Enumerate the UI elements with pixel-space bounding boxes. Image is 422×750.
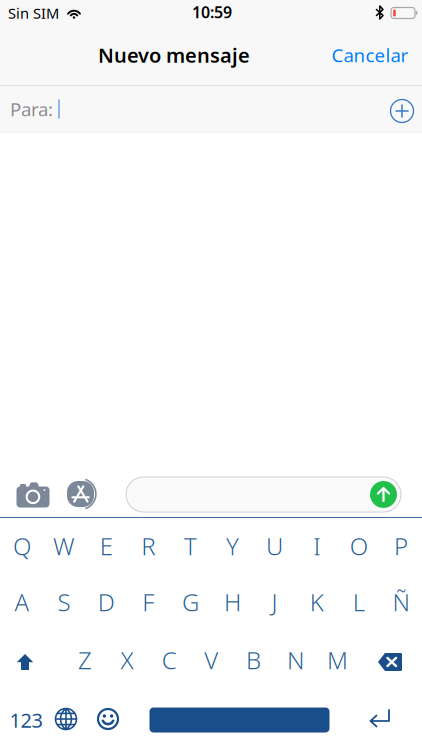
- button[interactable]: Space: [139, 698, 339, 742]
- staticText: O: [350, 530, 368, 562]
- staticText: Z: [78, 644, 92, 676]
- button[interactable]: S: [43, 577, 85, 627]
- button[interactable]: Return: [358, 698, 400, 742]
- button[interactable]: P: [380, 521, 422, 571]
- staticText: K: [310, 586, 324, 618]
- staticText: X: [121, 644, 134, 676]
- staticText: H: [224, 586, 241, 618]
- staticText: A: [14, 586, 29, 618]
- button[interactable]: H: [211, 577, 253, 627]
- staticText: Y: [226, 530, 239, 562]
- button[interactable]: U: [254, 521, 296, 571]
- staticText: L: [353, 586, 365, 618]
- staticText: Para:: [10, 97, 53, 121]
- staticText: J: [272, 586, 278, 618]
- staticText: R: [141, 530, 155, 562]
- staticText: 123: [9, 707, 42, 733]
- staticText: M: [327, 644, 348, 676]
- staticText: Q: [13, 530, 31, 562]
- button[interactable]: B: [232, 635, 274, 685]
- button[interactable]: C: [148, 635, 190, 685]
- staticText: C: [162, 644, 177, 676]
- button[interactable]: Switch keyboard: [45, 698, 87, 742]
- button[interactable]: A: [1, 577, 43, 627]
- button[interactable]: T: [169, 521, 211, 571]
- staticText: Cancelar: [331, 43, 408, 67]
- button[interactable]: F: [127, 577, 169, 627]
- button[interactable]: X: [106, 635, 148, 685]
- button[interactable]: K: [296, 577, 338, 627]
- staticText: F: [142, 586, 154, 618]
- button[interactable]: Shift: [4, 639, 46, 685]
- button[interactable]: W: [43, 521, 85, 571]
- staticText: D: [98, 586, 115, 618]
- staticText: S: [58, 586, 71, 618]
- staticText: T: [184, 530, 197, 562]
- button[interactable]: 123: [5, 698, 47, 742]
- button[interactable]: Camera: [13, 474, 53, 514]
- button[interactable]: Add contact: [380, 89, 422, 133]
- staticText: E: [100, 530, 113, 562]
- button[interactable]: Z: [64, 635, 106, 685]
- button[interactable]: D: [85, 577, 127, 627]
- button[interactable]: Apps: [64, 474, 104, 514]
- staticText: Sin SIM: [8, 3, 59, 23]
- staticText: V: [204, 644, 218, 676]
- staticText: B: [246, 644, 261, 676]
- button[interactable]: R: [127, 521, 169, 571]
- staticText: N: [287, 644, 304, 676]
- staticText: G: [182, 586, 199, 618]
- button[interactable]: Cancelar: [320, 33, 419, 77]
- button[interactable]: M: [317, 635, 359, 685]
- staticText: Nuevo mensaje: [98, 42, 250, 68]
- button[interactable]: J: [254, 577, 296, 627]
- button[interactable]: N: [274, 635, 316, 685]
- button[interactable]: O: [338, 521, 380, 571]
- staticText: U: [266, 530, 283, 562]
- button[interactable]: L: [338, 577, 380, 627]
- button[interactable]: Q: [1, 521, 43, 571]
- staticText: I: [313, 530, 320, 562]
- staticText: 10:59: [192, 1, 232, 23]
- button[interactable]: G: [169, 577, 211, 627]
- button[interactable]: Ñ: [380, 577, 422, 627]
- button[interactable]: Y: [211, 521, 253, 571]
- button[interactable]: Delete: [369, 639, 411, 685]
- button[interactable]: V: [190, 635, 232, 685]
- button[interactable]: Emoji: [87, 698, 129, 742]
- button[interactable]: Send: [370, 481, 397, 508]
- staticText: P: [394, 530, 408, 562]
- staticText: Ñ: [392, 586, 409, 618]
- button[interactable]: I: [296, 521, 338, 571]
- button[interactable]: E: [85, 521, 127, 571]
- staticText: W: [53, 530, 75, 562]
